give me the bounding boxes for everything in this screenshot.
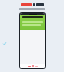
button[interactable] (5, 3, 59, 6)
other: Accent (3, 42, 6, 45)
button[interactable]: Record (20, 64, 45, 68)
button[interactable] (20, 15, 45, 30)
